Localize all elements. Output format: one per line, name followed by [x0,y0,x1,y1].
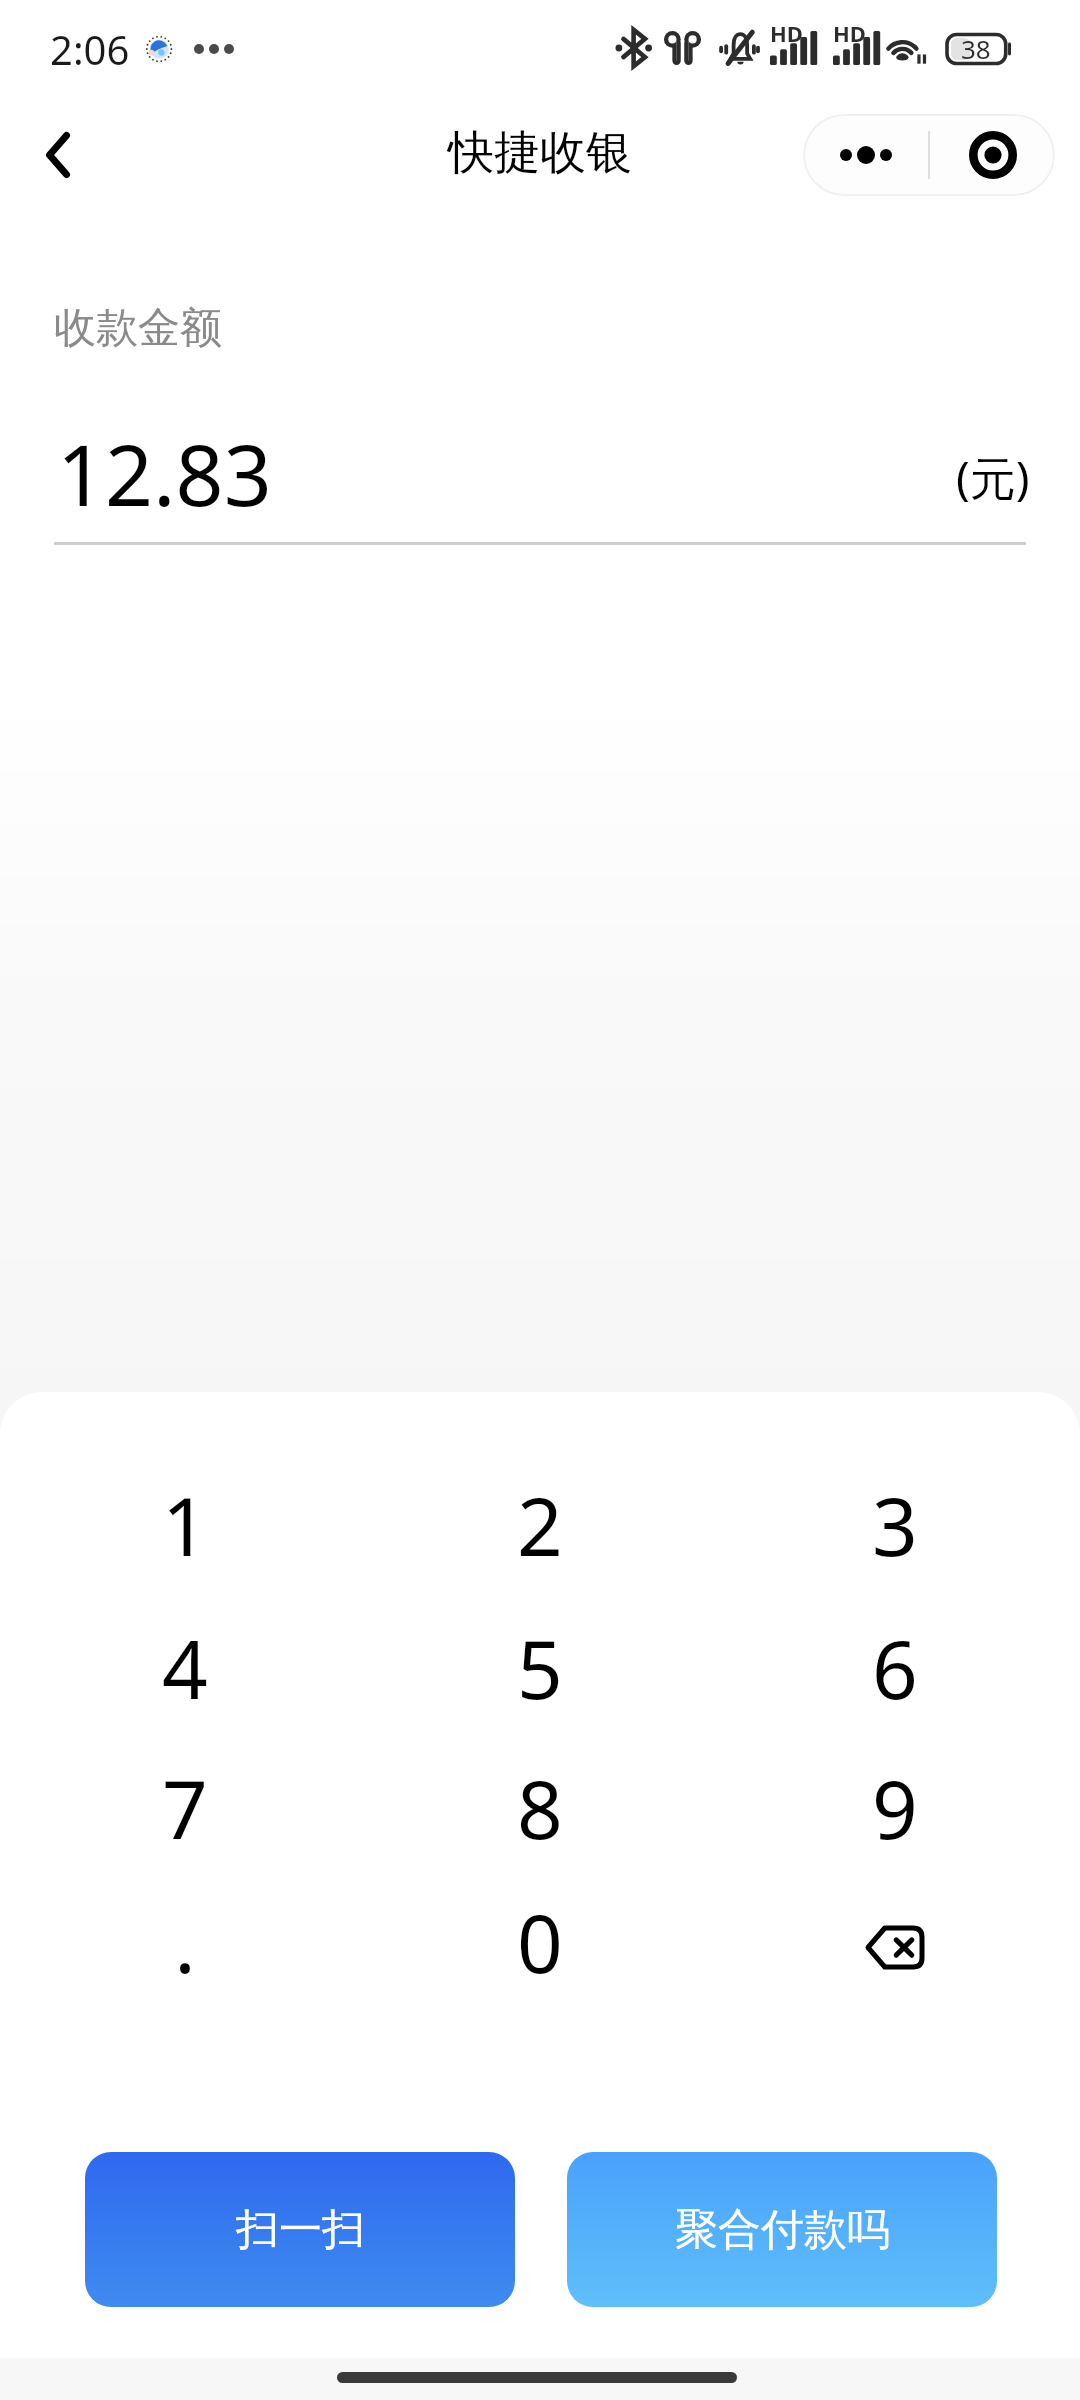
button[interactable]: 4 [8,1597,362,1737]
button[interactable]: 聚合付款吗 [567,2152,997,2307]
staticText: 3 [872,1470,918,1579]
button[interactable]: 3 [717,1454,1072,1594]
staticText: . [174,1887,196,1996]
staticText: 9 [872,1753,918,1862]
staticText: 5 [517,1613,563,1722]
button[interactable]: More options [803,114,928,196]
staticText: 1 [162,1470,208,1579]
button[interactable]: Backspace [717,1871,1072,2011]
staticText: 6 [872,1613,918,1722]
staticText: 扫一扫 [236,2203,365,2257]
button[interactable]: 5 [362,1597,717,1737]
staticText: 快捷收银 [448,124,632,182]
button[interactable]: 9 [717,1737,1072,1877]
staticText: 4 [162,1613,208,1722]
button[interactable]: Close mini program [930,114,1055,196]
button[interactable]: . [8,1871,362,2011]
staticText: 8 [517,1753,563,1862]
button[interactable]: 6 [717,1597,1072,1737]
staticText: 聚合付款吗 [675,2203,890,2257]
button[interactable]: 2 [362,1454,717,1594]
button[interactable]: Back [16,115,96,195]
button[interactable]: 1 [8,1454,362,1594]
staticText: 38 [961,31,991,66]
button[interactable]: Amount input 12.83 yuan [54,410,1026,545]
button[interactable]: 7 [8,1737,362,1877]
staticText: HD [833,18,866,48]
staticText: 2 [517,1470,563,1579]
button[interactable]: 0 [362,1871,717,2011]
button[interactable]: 8 [362,1737,717,1877]
staticText: HD [770,18,803,48]
staticText: 2:06 [50,22,130,76]
staticText: 0 [517,1887,563,1996]
staticText: (元) [956,446,1030,509]
staticText: 收款金额 [54,302,222,355]
button[interactable]: 扫一扫 [85,2152,515,2307]
staticText: 7 [162,1753,208,1862]
staticText: 12.83 [57,416,272,530]
